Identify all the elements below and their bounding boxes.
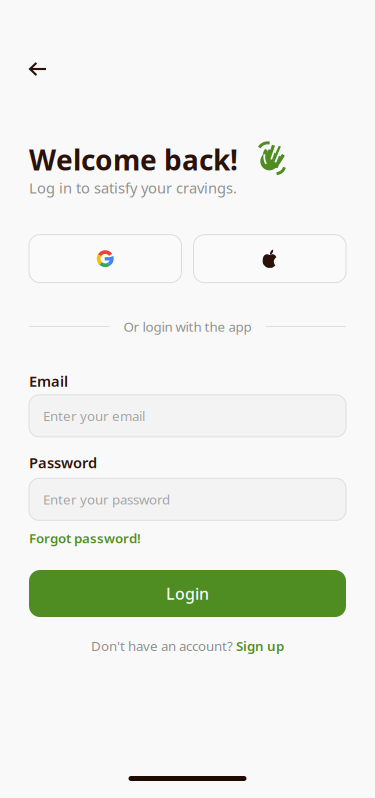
- button[interactable]: Enter your email: [29, 395, 346, 437]
- button[interactable]: Sign in with Apple: [193, 235, 346, 283]
- staticText: Login: [166, 583, 209, 604]
- staticText: Sign up: [236, 637, 284, 655]
- staticText: Log in to satisfy your cravings.: [29, 178, 237, 198]
- staticText: Welcome back!: [29, 141, 238, 178]
- staticText: Forgot password!: [29, 529, 141, 547]
- staticText: Don't have an account?: [91, 637, 236, 655]
- staticText: Enter your password: [43, 490, 170, 508]
- button[interactable]: Back: [0, 47, 72, 91]
- staticText: Email: [29, 371, 68, 391]
- button[interactable]: Sign in with Google: [29, 235, 181, 283]
- staticText: Enter your email: [43, 407, 145, 425]
- staticText: Or login with the app: [123, 318, 251, 335]
- button[interactable]: Forgot password!: [0, 528, 141, 548]
- staticText: Password: [29, 453, 97, 472]
- button[interactable]: Enter your password: [29, 478, 346, 520]
- button[interactable]: Sign up: [236, 637, 284, 655]
- button[interactable]: Login: [0, 570, 375, 617]
